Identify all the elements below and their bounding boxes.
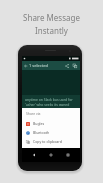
staticText: Share Message [23,12,80,23]
staticText: Share via [26,111,41,116]
button[interactable]: Bugles [22,119,80,128]
button[interactable]: Bluetooth [22,128,80,137]
button[interactable]: Back [23,63,29,69]
staticText: Instantly [35,25,68,36]
button[interactable]: Copy [71,62,79,70]
staticText: Copy to clipboard [33,139,62,144]
button[interactable]: Home [46,150,56,160]
button[interactable]: Share [63,62,71,70]
staticText: 1 selected [29,63,48,68]
staticText: anytime on Slack bus used for 'usher' wh… [25,97,77,107]
staticText: Bluetooth [33,130,50,135]
button[interactable]: Copy to clipboard [22,137,80,146]
button[interactable]: Recents [63,150,73,160]
staticText: Bugles [33,121,45,126]
button[interactable]: Back [29,150,39,160]
